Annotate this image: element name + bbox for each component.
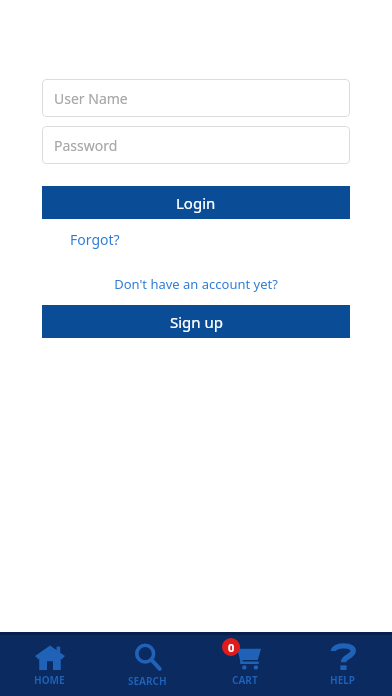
staticText: Password bbox=[54, 136, 118, 155]
button[interactable]: Help bbox=[294, 635, 392, 696]
button[interactable]: Forgot? bbox=[70, 228, 120, 251]
button[interactable]: Don't have an account yet? bbox=[0, 275, 392, 293]
staticText: 0 bbox=[228, 640, 235, 655]
staticText: HELP bbox=[330, 673, 356, 687]
staticText: Login bbox=[176, 193, 216, 213]
button[interactable]: Login bbox=[42, 186, 350, 219]
button[interactable]: Home bbox=[0, 635, 98, 696]
button[interactable]: Password bbox=[42, 126, 350, 164]
staticText: User Name bbox=[54, 89, 128, 108]
staticText: Don't have an account yet? bbox=[114, 275, 278, 293]
staticText: Forgot? bbox=[70, 230, 120, 249]
button[interactable]: Search bbox=[98, 635, 196, 696]
staticText: HOME bbox=[34, 673, 65, 687]
staticText: CART bbox=[232, 673, 258, 687]
staticText: SEARCH bbox=[128, 674, 167, 688]
staticText: Sign up bbox=[170, 312, 223, 332]
button[interactable]: User Name bbox=[42, 79, 350, 117]
button[interactable]: Sign up bbox=[42, 305, 350, 338]
button[interactable]: Cart, 0 items bbox=[196, 635, 294, 696]
